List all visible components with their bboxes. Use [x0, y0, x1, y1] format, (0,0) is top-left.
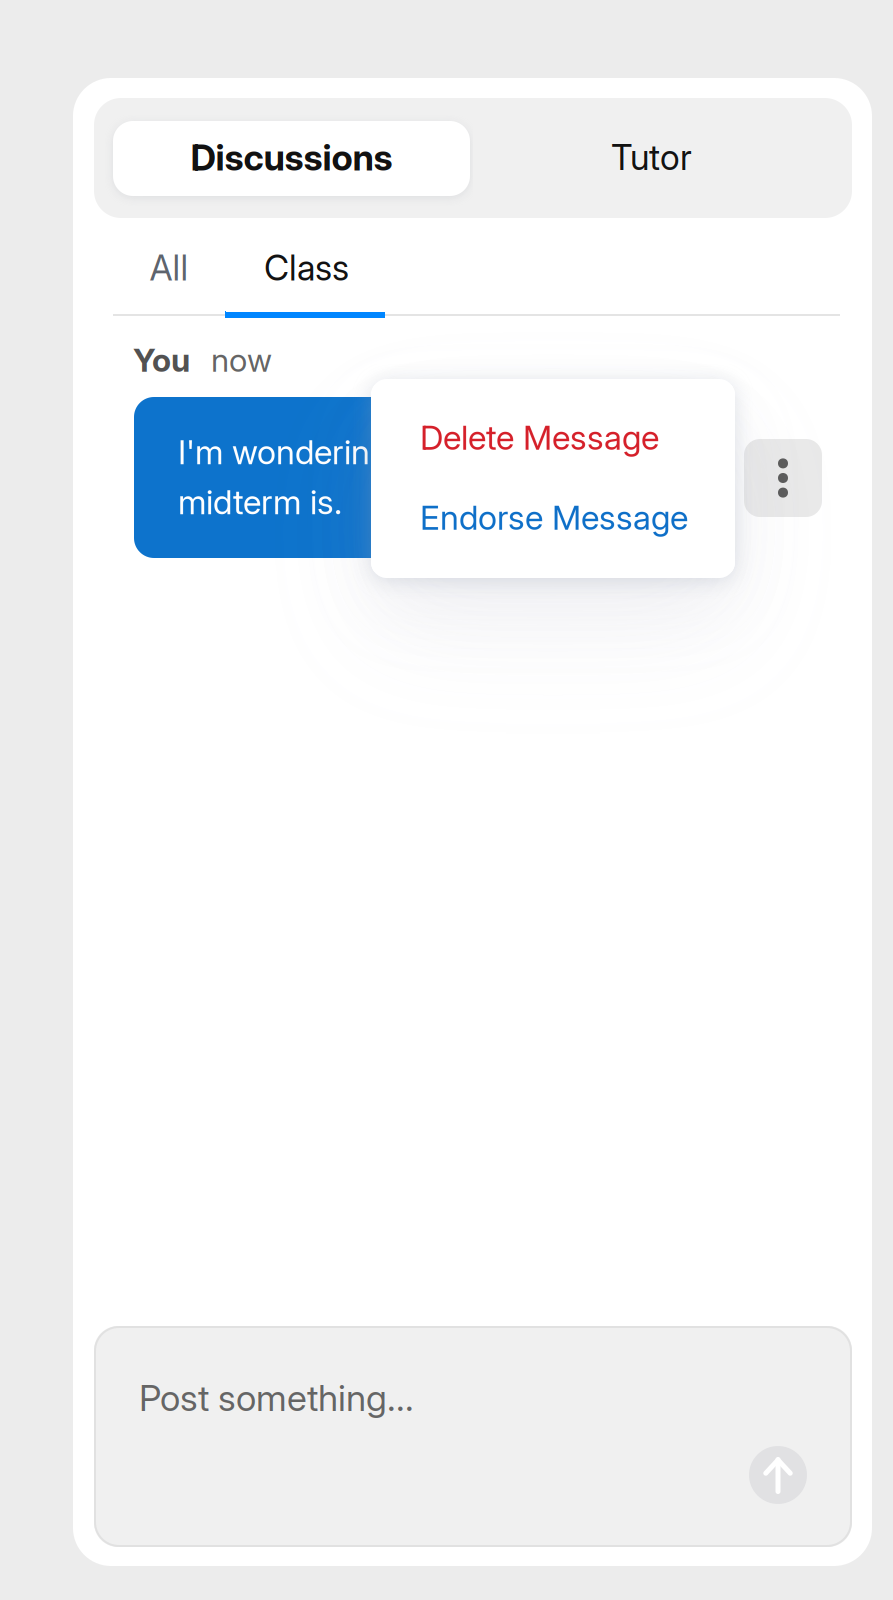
- button[interactable]: Class: [226, 242, 385, 312]
- button[interactable]: Delete Message: [371, 385, 735, 484]
- staticText: Class: [264, 247, 349, 289]
- button[interactable]: Discussions: [113, 121, 470, 196]
- button[interactable]: All: [120, 242, 218, 312]
- staticText: Discussions: [190, 136, 392, 179]
- staticText: All: [149, 247, 188, 289]
- staticText: Post something...: [139, 1376, 414, 1420]
- staticText: Endorse Message: [420, 497, 688, 538]
- button[interactable]: Send: [749, 1446, 807, 1504]
- button[interactable]: Tutor: [473, 121, 830, 196]
- button[interactable]: More options: [744, 439, 822, 517]
- staticText: midterm is.: [178, 482, 342, 522]
- button[interactable]: Endorse Message: [371, 473, 735, 572]
- staticText: You: [133, 341, 190, 379]
- staticText: Tutor: [611, 136, 692, 178]
- staticText: I'm wondering when the: [178, 432, 537, 472]
- staticText: now: [211, 341, 272, 379]
- staticText: Delete Message: [420, 417, 659, 458]
